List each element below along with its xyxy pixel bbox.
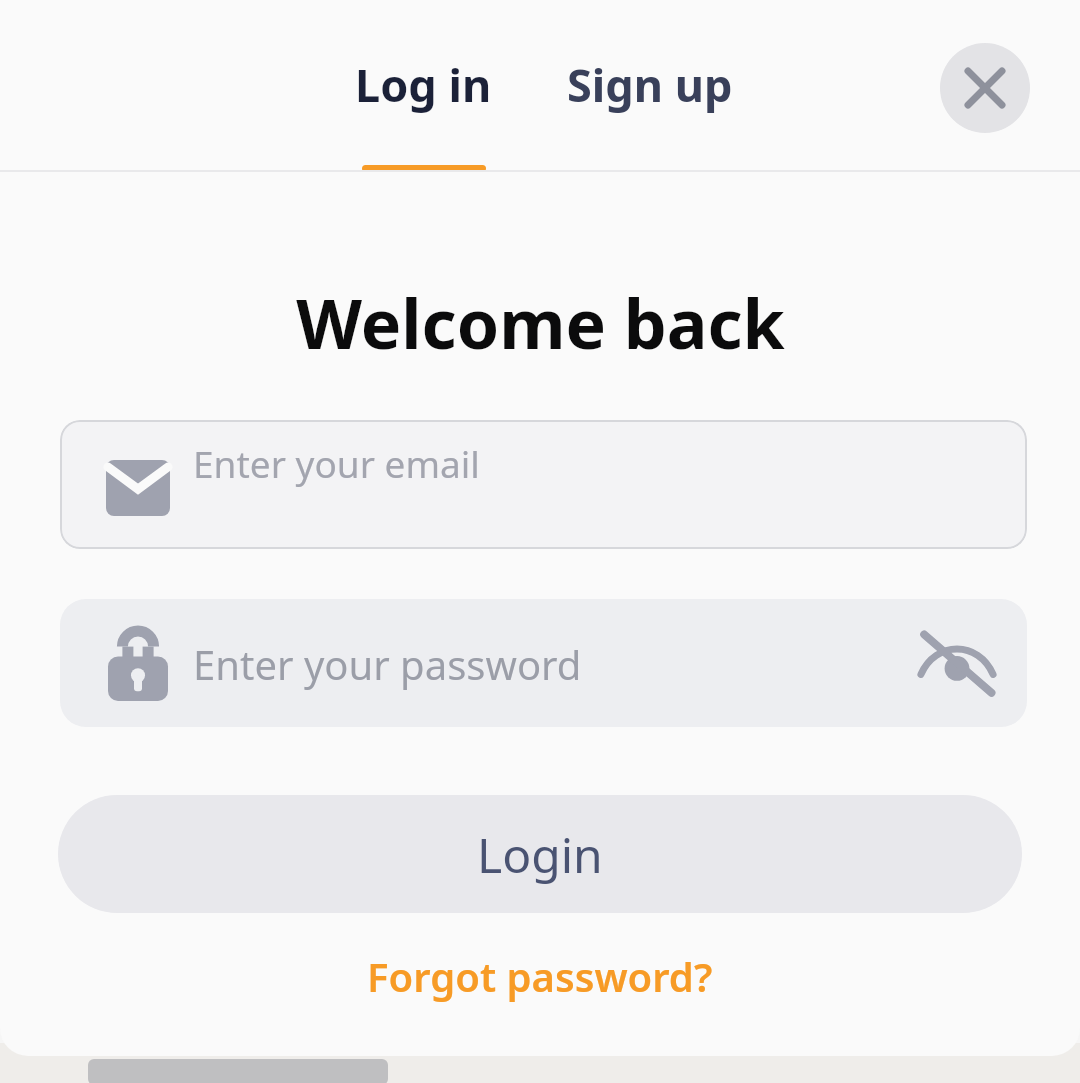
staticText: Forgot password? — [367, 949, 713, 1003]
button[interactable]: Enter your email — [60, 420, 1027, 549]
button[interactable]: Show password — [905, 611, 1009, 715]
staticText: Sign up — [567, 54, 733, 115]
button[interactable]: Close — [940, 43, 1030, 133]
button[interactable]: Enter your password — [60, 599, 1027, 727]
staticText: Welcome back — [296, 276, 785, 369]
staticText: Enter your email — [193, 438, 480, 488]
button[interactable]: Log in — [330, 0, 516, 172]
button[interactable]: Login — [58, 795, 1022, 913]
staticText: Login — [477, 822, 603, 887]
staticText: Enter your password — [193, 637, 582, 691]
button[interactable]: Sign up — [540, 0, 760, 172]
button[interactable]: Forgot password? — [349, 939, 731, 1013]
staticText: Log in — [355, 54, 492, 115]
